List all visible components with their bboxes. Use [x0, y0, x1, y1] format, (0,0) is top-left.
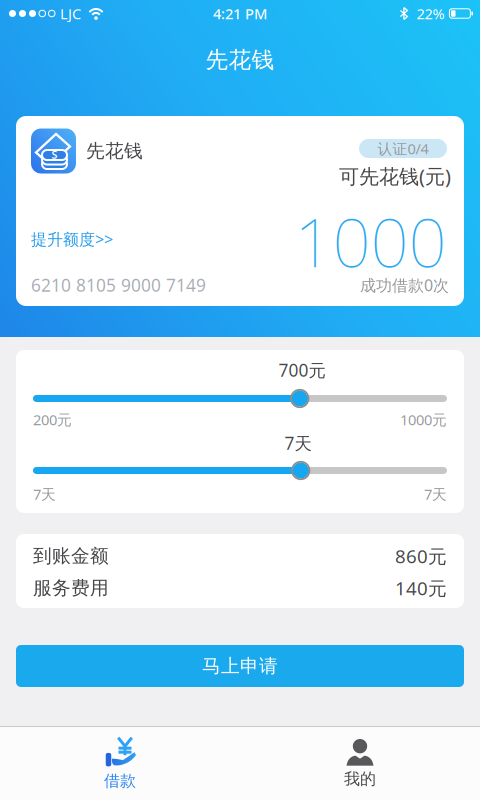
staticText: 4:21 PM [213, 4, 267, 23]
staticText: 到账金额 [33, 544, 109, 567]
staticText: 服务费用 [33, 576, 109, 599]
staticText: 1000 [294, 197, 446, 286]
button[interactable]: 认证0/4 [359, 139, 447, 158]
staticText: 7天 [284, 431, 311, 454]
button[interactable]: 马上申请 [16, 645, 464, 687]
staticText: 提升额度>> [31, 228, 113, 250]
staticText: 先花钱 [86, 139, 143, 162]
staticText: 200元 [33, 410, 72, 429]
staticText: 1000元 [400, 410, 447, 429]
staticText: 成功借款0次 [360, 274, 449, 296]
button[interactable]: 借款 [0, 728, 240, 800]
button[interactable]: 提升额度>> [31, 228, 113, 250]
staticText: 认证0/4 [377, 139, 428, 158]
staticText: 700元 [278, 358, 325, 381]
staticText: 借款 [104, 771, 136, 791]
staticText: 140元 [395, 576, 447, 600]
staticText: 可先花钱(元) [339, 163, 451, 189]
staticText: LJC [60, 4, 81, 23]
button[interactable]: 我的 [240, 728, 480, 800]
staticText: 马上申请 [202, 654, 278, 677]
staticText: 860元 [395, 544, 447, 568]
staticText: 我的 [344, 769, 376, 789]
staticText: 7天 [424, 484, 447, 504]
button[interactable]: 借款期限 [33, 461, 447, 479]
staticText: 先花钱 [205, 46, 274, 74]
staticText: S [51, 147, 57, 162]
button[interactable]: 借款金额 [33, 389, 447, 407]
staticText: 6210 8105 9000 7149 [31, 273, 206, 296]
staticText: 7天 [33, 484, 56, 504]
staticText: 22% [416, 4, 444, 23]
